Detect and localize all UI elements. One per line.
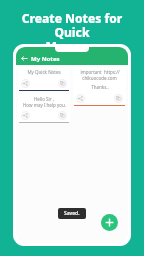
staticText: chikuocode.com	[82, 75, 117, 81]
button[interactable]: Copy	[58, 111, 67, 120]
button[interactable]: Share	[76, 94, 85, 103]
button[interactable]: Back	[21, 52, 128, 65]
staticText: My Quick Notes	[27, 69, 61, 75]
other: Back	[21, 55, 28, 62]
button[interactable]: Share	[21, 79, 30, 88]
staticText: Saved.	[64, 210, 80, 217]
button[interactable]: Add note	[101, 214, 118, 231]
staticText: My Notes	[31, 55, 60, 63]
staticText: Hello Sir ,	[34, 96, 54, 102]
staticText: important https://	[80, 69, 120, 75]
button[interactable]: My Quick Notes	[18, 67, 70, 91]
button[interactable]: Hello Sir ,	[18, 94, 70, 123]
button[interactable]: Copy	[58, 79, 67, 88]
staticText: How may I help you.	[23, 102, 66, 108]
staticText: Thanks..	[91, 84, 109, 90]
staticText: Create Notes for Quick Message	[6, 10, 138, 55]
button[interactable]: important https://	[73, 67, 126, 106]
button[interactable]: Share	[21, 111, 30, 120]
button[interactable]: Copy	[114, 94, 123, 103]
